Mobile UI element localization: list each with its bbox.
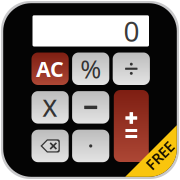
- button[interactable]: Plus and equals: [114, 90, 149, 162]
- staticText: %: [80, 52, 101, 85]
- button[interactable]: Delete: [31, 130, 69, 162]
- staticText: 0: [123, 12, 139, 49]
- staticText: FREE: [143, 146, 176, 165]
- button[interactable]: [31, 91, 69, 124]
- staticText: X: [43, 91, 58, 123]
- button[interactable]: Divide: [113, 52, 150, 85]
- button[interactable]: Decimal point: [72, 130, 109, 162]
- button[interactable]: Minus: [72, 91, 109, 124]
- button[interactable]: [31, 52, 69, 85]
- staticText: AC: [36, 55, 64, 83]
- button[interactable]: [72, 52, 109, 85]
